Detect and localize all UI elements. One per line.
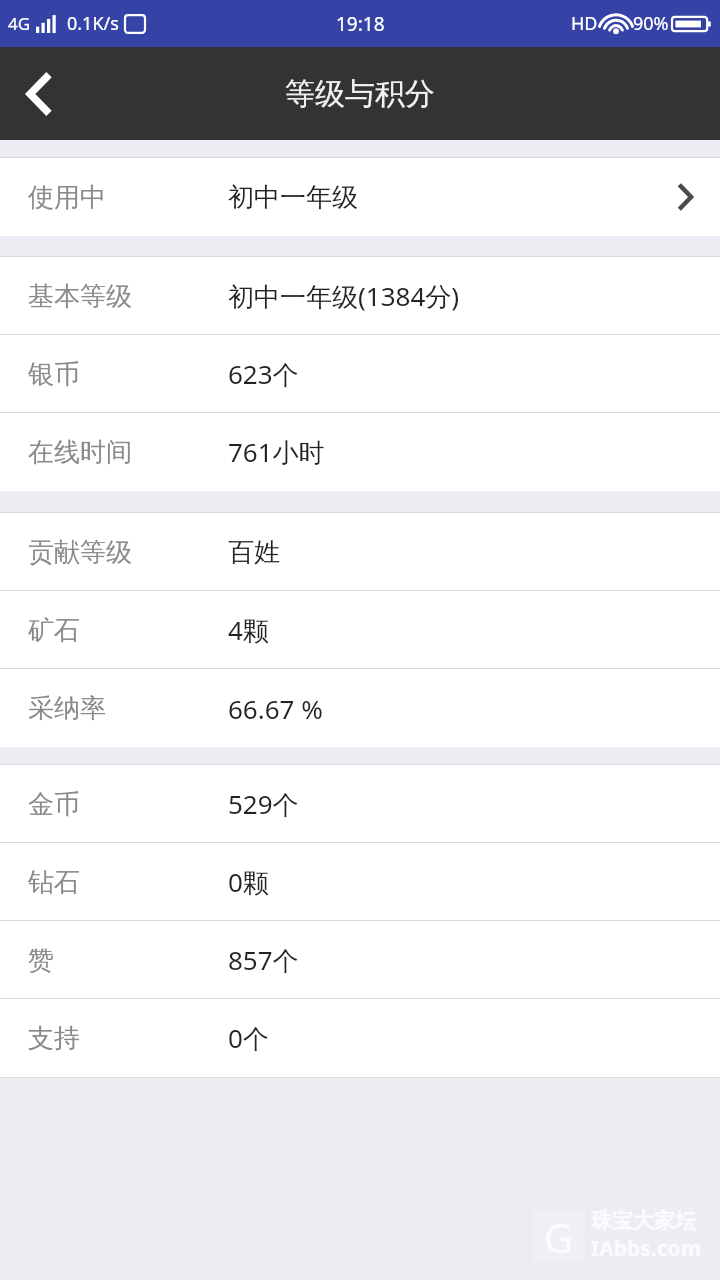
button[interactable]: 采纳率 (0, 669, 720, 747)
staticText: 19:18 (336, 11, 385, 37)
button[interactable]: 矿石 (0, 591, 720, 669)
staticText: 0颗 (228, 864, 269, 900)
staticText: 初中一年级 (228, 181, 358, 214)
staticText: 百姓 (228, 536, 280, 569)
staticText: HD (571, 11, 598, 36)
staticText: 4颗 (228, 612, 269, 648)
staticText: G (544, 1210, 574, 1262)
staticText: 银币 (28, 358, 228, 391)
staticText: 857个 (228, 942, 299, 978)
button[interactable]: 支持 (0, 999, 720, 1077)
staticText: 赞 (28, 944, 228, 977)
staticText: IAbbs.com (591, 1234, 702, 1263)
button[interactable]: 钻石 (0, 843, 720, 921)
staticText: 4G (8, 12, 31, 35)
button[interactable]: 银币 (0, 335, 720, 413)
staticText: 矿石 (28, 614, 228, 647)
staticText: 支持 (28, 1022, 228, 1055)
staticText: 0个 (228, 1020, 269, 1056)
staticText: 采纳率 (28, 692, 228, 725)
button[interactable]: 贡献等级 (0, 513, 720, 591)
staticText: 0.1K/s (67, 11, 119, 36)
staticText: 贡献等级 (28, 536, 228, 569)
button[interactable]: Back (0, 47, 76, 140)
staticText: 珠宝大家坛 (591, 1208, 696, 1234)
staticText: 529个 (228, 786, 299, 822)
button[interactable]: 在线时间 (0, 413, 720, 491)
button[interactable]: 基本等级 (0, 257, 720, 335)
staticText: 钻石 (28, 866, 228, 899)
staticText: 使用中 (28, 181, 228, 214)
staticText: 基本等级 (28, 280, 228, 313)
button[interactable]: 金币 (0, 765, 720, 843)
staticText: 761小时 (228, 434, 325, 470)
staticText: 66.67 % (228, 691, 323, 726)
staticText: 初中一年级(1384分) (228, 278, 460, 314)
button[interactable]: 使用中 (0, 158, 720, 236)
button[interactable]: 赞 (0, 921, 720, 999)
staticText: 623个 (228, 356, 299, 392)
staticText: 等级与积分 (285, 75, 435, 113)
staticText: 在线时间 (28, 436, 228, 469)
staticText: 90% (633, 11, 669, 36)
staticText: 金币 (28, 788, 228, 821)
